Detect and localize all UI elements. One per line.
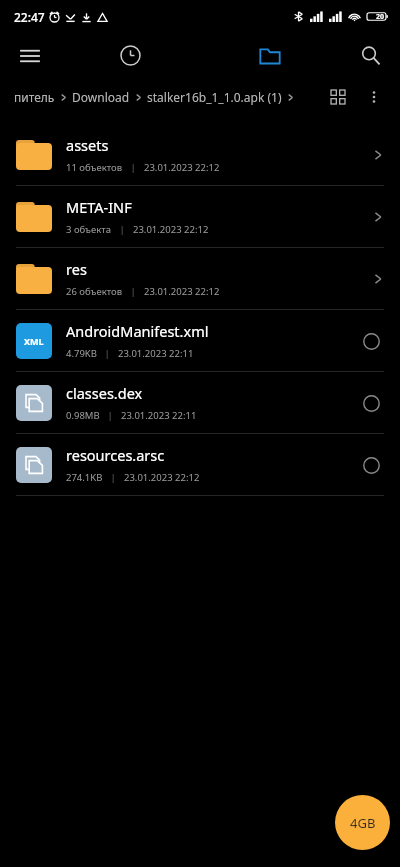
- staticText: 3 объекта: [66, 223, 112, 236]
- staticText: |: [97, 347, 118, 360]
- staticText: 23.01.2023 22:12: [133, 223, 209, 236]
- staticText: |: [103, 471, 124, 484]
- staticText: resources.arsc: [66, 445, 165, 465]
- button[interactable]: Grid view: [320, 79, 356, 115]
- staticText: 274.1KB: [66, 471, 103, 484]
- staticText: Download: [72, 89, 130, 105]
- button[interactable]: 4GB: [335, 795, 390, 850]
- button[interactable]: Select classes.dex: [356, 388, 386, 418]
- staticText: 23.01.2023 22:12: [144, 285, 220, 298]
- staticText: classes.dex: [66, 383, 143, 403]
- staticText: 23.01.2023 22:11: [118, 347, 194, 360]
- staticText: питель: [14, 89, 55, 105]
- other: Files: [259, 45, 281, 67]
- button[interactable]: Menu: [0, 33, 60, 78]
- button[interactable]: res: [0, 248, 400, 309]
- staticText: |: [123, 285, 144, 298]
- staticText: META-INF: [66, 197, 132, 217]
- staticText: 0.98MB: [66, 409, 100, 422]
- staticText: |: [112, 223, 133, 236]
- staticText: 20: [376, 12, 385, 22]
- button[interactable]: Select resources.arsc: [356, 450, 386, 480]
- staticText: assets: [66, 135, 109, 155]
- staticText: 23.01.2023 22:12: [124, 471, 200, 484]
- staticText: 23.01.2023 22:11: [121, 409, 197, 422]
- staticText: AndroidManifest.xml: [66, 321, 209, 341]
- staticText: XML: [24, 335, 44, 347]
- button[interactable]: Search: [340, 33, 400, 78]
- button[interactable]: resources.arsc: [0, 434, 400, 495]
- staticText: 26 объектов: [66, 285, 123, 298]
- staticText: |: [100, 409, 121, 422]
- button[interactable]: More options: [356, 79, 392, 115]
- staticText: res: [66, 259, 87, 279]
- staticText: stalker16b_1_1.0.apk (1): [147, 89, 282, 105]
- button[interactable]: питель: [14, 89, 320, 105]
- button[interactable]: XML: [0, 310, 400, 371]
- button[interactable]: Recent: [60, 33, 200, 78]
- button[interactable]: Select AndroidManifest.xml: [356, 326, 386, 356]
- button[interactable]: Files: [200, 33, 340, 78]
- staticText: |: [123, 161, 144, 174]
- staticText: 4GB: [350, 814, 376, 832]
- staticText: 4.79KB: [66, 347, 97, 360]
- staticText: 11 объектов: [66, 161, 123, 174]
- button[interactable]: assets: [0, 124, 400, 185]
- button[interactable]: classes.dex: [0, 372, 400, 433]
- staticText: 23.01.2023 22:12: [144, 161, 220, 174]
- staticText: 22:47: [14, 9, 45, 25]
- other: Recent: [120, 45, 141, 66]
- button[interactable]: META-INF: [0, 186, 400, 247]
